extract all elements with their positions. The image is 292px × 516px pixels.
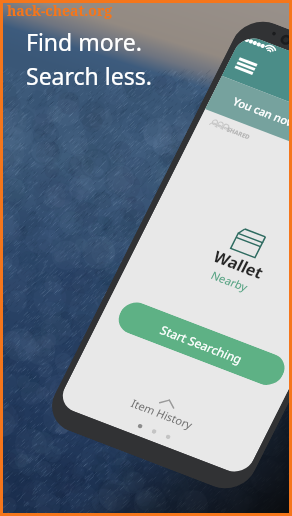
staticText: Wallet bbox=[204, 232, 273, 297]
staticText: hack-cheat.org bbox=[7, 1, 113, 20]
button[interactable]: Item History bbox=[61, 311, 269, 510]
button[interactable]: Start Searching bbox=[105, 251, 292, 436]
staticText: Find more. bbox=[26, 26, 142, 57]
staticText: Nearby bbox=[205, 257, 255, 305]
button[interactable]: You can now share your items bbox=[196, 22, 292, 235]
button[interactable]: Open navigation menu bbox=[232, 52, 260, 80]
staticText: Search less. bbox=[26, 60, 152, 91]
staticText: Item History bbox=[125, 378, 200, 450]
staticText: Start Searching bbox=[154, 299, 249, 390]
staticText: SHARED bbox=[223, 119, 253, 148]
button[interactable]: SHARED bbox=[204, 105, 255, 154]
staticText: You can now share your items bbox=[227, 51, 292, 206]
